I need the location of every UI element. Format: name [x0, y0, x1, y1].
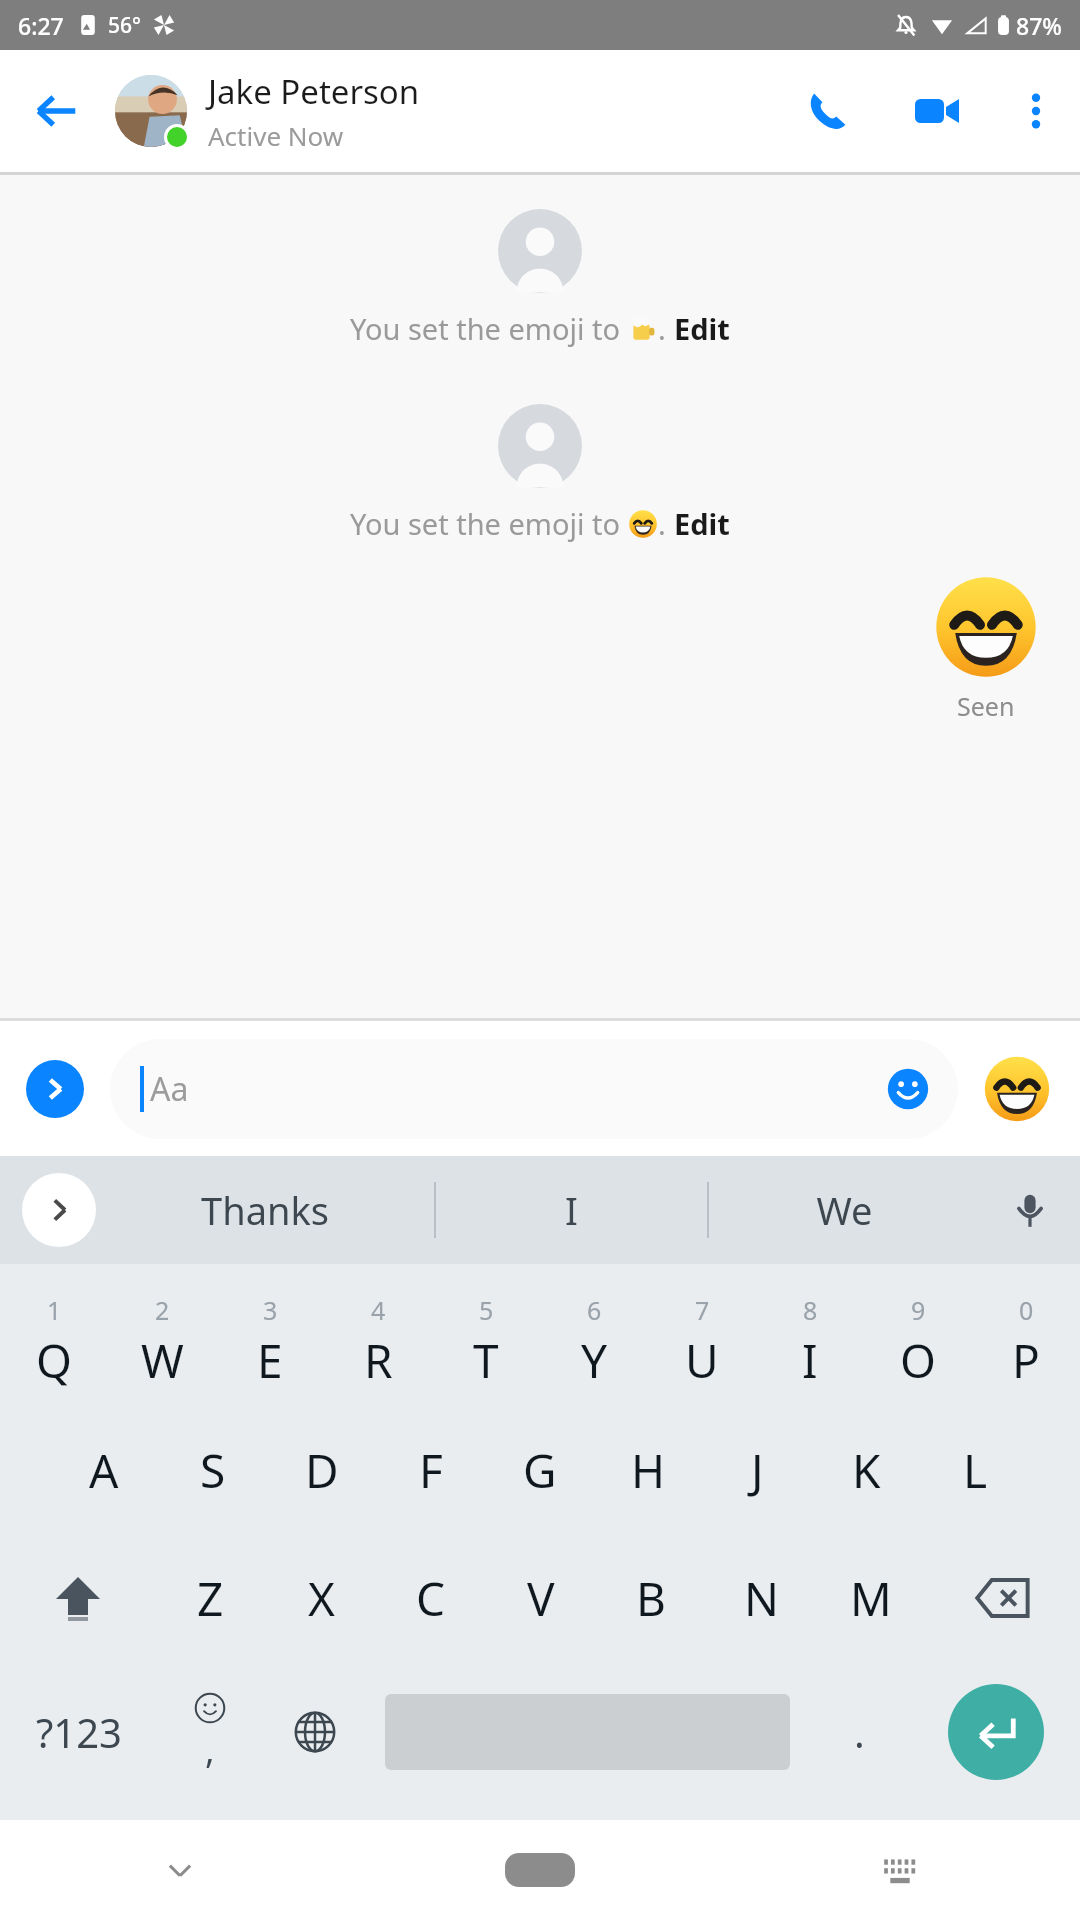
button[interactable]: Back: [0, 50, 112, 172]
button[interactable]: H: [594, 1406, 703, 1534]
staticText: H: [631, 1439, 666, 1502]
button[interactable]: 5: [432, 1278, 540, 1406]
button[interactable]: Thanks: [96, 1156, 434, 1264]
staticText: G: [523, 1439, 557, 1502]
staticText: 3: [263, 1293, 278, 1327]
staticText: You set the emoji to: [350, 504, 628, 543]
staticText: R: [364, 1329, 393, 1392]
button[interactable]: Stickers: [884, 1065, 932, 1113]
staticText: W: [141, 1329, 184, 1392]
staticText: V: [527, 1567, 555, 1630]
button[interactable]: Emoji and comma: [157, 1662, 262, 1802]
button[interactable]: J: [703, 1406, 812, 1534]
staticText: Active Now: [208, 118, 344, 153]
button[interactable]: I: [436, 1156, 707, 1264]
staticText: 1: [47, 1293, 62, 1327]
button[interactable]: 9: [864, 1278, 972, 1406]
button[interactable]: Voice input: [980, 1156, 1080, 1264]
button[interactable]: C: [376, 1534, 486, 1662]
staticText: 2: [155, 1293, 170, 1327]
staticText: N: [744, 1567, 779, 1630]
staticText: We: [816, 1184, 873, 1236]
staticText: U: [685, 1329, 719, 1392]
button[interactable]: G: [485, 1406, 594, 1534]
button[interactable]: Switch keyboard: [720, 1820, 1080, 1920]
staticText: L: [963, 1439, 988, 1502]
staticText: F: [419, 1439, 443, 1502]
staticText: I: [565, 1184, 578, 1236]
staticText: Thanks: [201, 1184, 329, 1236]
staticText: .: [658, 309, 674, 348]
button[interactable]: S: [158, 1406, 267, 1534]
button[interactable]: 3: [216, 1278, 324, 1406]
button[interactable]: D: [267, 1406, 376, 1534]
button[interactable]: 1: [0, 1278, 108, 1406]
button[interactable]: F: [376, 1406, 485, 1534]
button[interactable]: Shift: [0, 1534, 155, 1662]
staticText: 0: [1019, 1293, 1034, 1327]
button[interactable]: 4: [324, 1278, 432, 1406]
button[interactable]: L: [921, 1406, 1030, 1534]
button[interactable]: Show more actions: [26, 1060, 84, 1118]
staticText: Q: [36, 1329, 72, 1392]
button[interactable]: Send emoji: [980, 1052, 1054, 1126]
button[interactable]: Aa: [110, 1039, 958, 1139]
button[interactable]: 6: [540, 1278, 648, 1406]
button[interactable]: K: [812, 1406, 921, 1534]
button[interactable]: 8: [756, 1278, 864, 1406]
button[interactable]: Z: [155, 1534, 266, 1662]
button[interactable]: X: [266, 1534, 376, 1662]
button[interactable]: Enter: [912, 1662, 1080, 1802]
button[interactable]: Edit: [674, 504, 730, 543]
staticText: 6: [587, 1293, 602, 1327]
staticText: I: [802, 1329, 818, 1392]
staticText: K: [852, 1439, 881, 1502]
staticText: S: [200, 1439, 226, 1502]
staticText: Aa: [150, 1067, 189, 1111]
button[interactable]: Expand toolbar: [22, 1173, 96, 1247]
button[interactable]: Change language: [262, 1662, 367, 1802]
staticText: 6:27: [18, 10, 64, 41]
button[interactable]: Edit: [674, 309, 730, 348]
staticText: E: [257, 1329, 283, 1392]
staticText: 87%: [1016, 10, 1062, 41]
staticText: Jake Peterson: [208, 69, 420, 114]
button[interactable]: Jake Peterson: [208, 69, 772, 153]
staticText: C: [416, 1567, 446, 1630]
staticText: 56°: [108, 11, 141, 40]
staticText: Y: [581, 1329, 608, 1392]
staticText: B: [636, 1567, 666, 1630]
staticText: .: [658, 504, 674, 543]
staticText: O: [900, 1329, 936, 1392]
button[interactable]: 0: [972, 1278, 1080, 1406]
staticText: ,: [205, 1725, 215, 1774]
staticText: X: [308, 1567, 335, 1630]
button[interactable]: [112, 72, 190, 150]
button[interactable]: Voice call: [772, 50, 882, 172]
button[interactable]: .: [807, 1662, 912, 1802]
staticText: 9: [911, 1293, 926, 1327]
staticText: 8: [803, 1293, 818, 1327]
button[interactable]: Hide keyboard: [0, 1820, 360, 1920]
staticText: M: [850, 1567, 892, 1630]
button[interactable]: [932, 573, 1040, 681]
button[interactable]: Home: [360, 1820, 720, 1920]
button[interactable]: N: [706, 1534, 816, 1662]
button[interactable]: More options: [992, 50, 1080, 172]
button[interactable]: 2: [108, 1278, 216, 1406]
staticText: .: [854, 1705, 865, 1759]
button[interactable]: Space: [367, 1662, 807, 1802]
button[interactable]: A: [50, 1406, 158, 1534]
button[interactable]: M: [816, 1534, 926, 1662]
staticText: You set the emoji to: [350, 309, 628, 348]
button[interactable]: ?123: [0, 1662, 157, 1802]
staticText: 4: [371, 1293, 386, 1327]
button[interactable]: 7: [648, 1278, 756, 1406]
button[interactable]: We: [709, 1156, 980, 1264]
button[interactable]: B: [596, 1534, 706, 1662]
button[interactable]: V: [486, 1534, 596, 1662]
button[interactable]: Video call: [882, 50, 992, 172]
staticText: 5: [479, 1293, 494, 1327]
button[interactable]: Backspace: [926, 1534, 1080, 1662]
staticText: Edit: [674, 309, 730, 348]
